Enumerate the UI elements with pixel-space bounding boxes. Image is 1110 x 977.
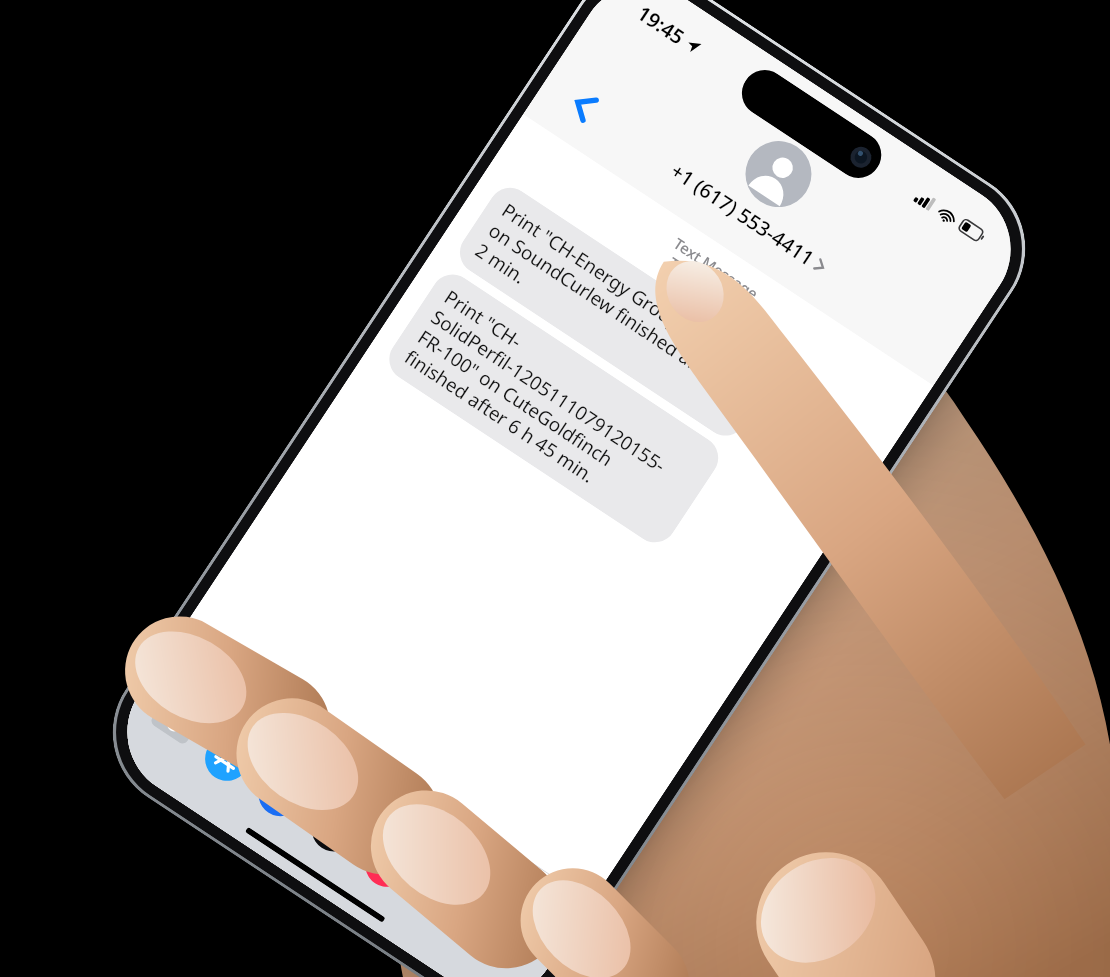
button[interactable]: Fitness — [299, 795, 368, 864]
staticText: Print "CH-SolidPerfil-1205111079120155-F… — [400, 284, 707, 533]
button[interactable]: Print "CH-SolidPerfil-1205111079120155-F… — [381, 266, 727, 551]
button[interactable]: Memoji 2 — [459, 901, 529, 970]
button[interactable]: App Store — [192, 724, 262, 793]
button[interactable]: Memoji — [406, 865, 475, 935]
button[interactable]: Camera — [139, 689, 208, 758]
button[interactable]: +1 (617) 553-4411 — [666, 96, 873, 280]
staticText: 19:45 — [632, 0, 690, 51]
button[interactable]: Stickers — [352, 830, 422, 899]
staticText: Text Message — [227, 680, 330, 759]
staticText: Print "CH-Energy Group-HT-100" on SoundC… — [471, 197, 765, 426]
staticText: Text Message Today 19:02 — [495, 124, 927, 428]
button[interactable]: Print "CH-Energy Group-HT-100" on SoundC… — [451, 179, 784, 444]
button[interactable]: Back — [555, 77, 616, 138]
staticText: +1 (617) 553-4411 — [666, 157, 820, 272]
button[interactable]: Apps — [176, 643, 223, 690]
button[interactable]: Audio message — [246, 759, 315, 829]
button[interactable]: Text Message — [210, 664, 577, 925]
